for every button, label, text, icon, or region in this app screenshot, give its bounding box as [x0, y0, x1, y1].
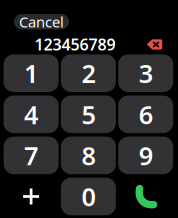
staticText: 3 — [139, 56, 153, 90]
staticText: 2 — [81, 56, 95, 90]
staticText: 9 — [139, 139, 153, 172]
button[interactable]: 6 — [118, 95, 173, 133]
button[interactable]: 7 — [4, 137, 59, 174]
button[interactable]: Delete — [139, 34, 170, 54]
button[interactable]: Call — [118, 178, 173, 215]
button[interactable]: 3 — [118, 54, 173, 92]
staticText: 123456789 — [34, 34, 115, 55]
staticText: 6 — [139, 97, 153, 131]
staticText: 8 — [81, 139, 95, 172]
button[interactable]: 5 — [61, 95, 116, 133]
button[interactable]: 9 — [118, 137, 173, 174]
staticText: 5 — [81, 97, 95, 131]
button[interactable]: 2 — [61, 54, 116, 92]
button[interactable]: 0 — [61, 178, 116, 215]
button[interactable]: 1 — [4, 54, 59, 92]
staticText: 7 — [24, 139, 38, 172]
button[interactable]: 8 — [61, 137, 116, 174]
staticText: Cancel — [19, 12, 64, 31]
staticText: 0 — [81, 180, 95, 213]
staticText: 4 — [24, 97, 38, 131]
button[interactable]: Plus — [4, 178, 59, 215]
staticText: 1 — [24, 56, 38, 90]
button[interactable]: Cancel — [14, 14, 69, 29]
button[interactable]: 4 — [4, 95, 59, 133]
